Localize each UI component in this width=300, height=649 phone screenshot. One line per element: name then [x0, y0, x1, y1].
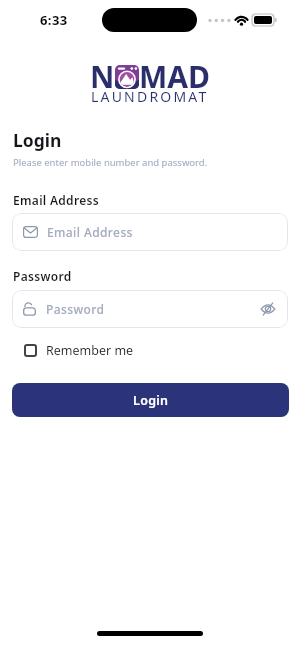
button[interactable]: Login [12, 383, 289, 417]
staticText: Remember me [46, 342, 134, 359]
button[interactable]: Password [12, 290, 288, 328]
button[interactable]: Remember me [24, 342, 134, 359]
staticText: Login [13, 128, 62, 152]
staticText: Email Address [47, 224, 133, 240]
staticText: Email Address [13, 192, 99, 208]
staticText: Login [133, 392, 169, 409]
staticText: N [90, 56, 115, 97]
staticText: MAD [139, 56, 211, 97]
staticText: 6:33 [40, 11, 68, 29]
staticText: LAUNDROMAT [91, 87, 209, 106]
staticText: Password [13, 268, 72, 284]
button[interactable] [260, 301, 276, 317]
staticText: Please enter mobile number and password. [13, 156, 208, 169]
button[interactable]: Email Address [12, 213, 288, 251]
staticText: Password [46, 301, 105, 317]
